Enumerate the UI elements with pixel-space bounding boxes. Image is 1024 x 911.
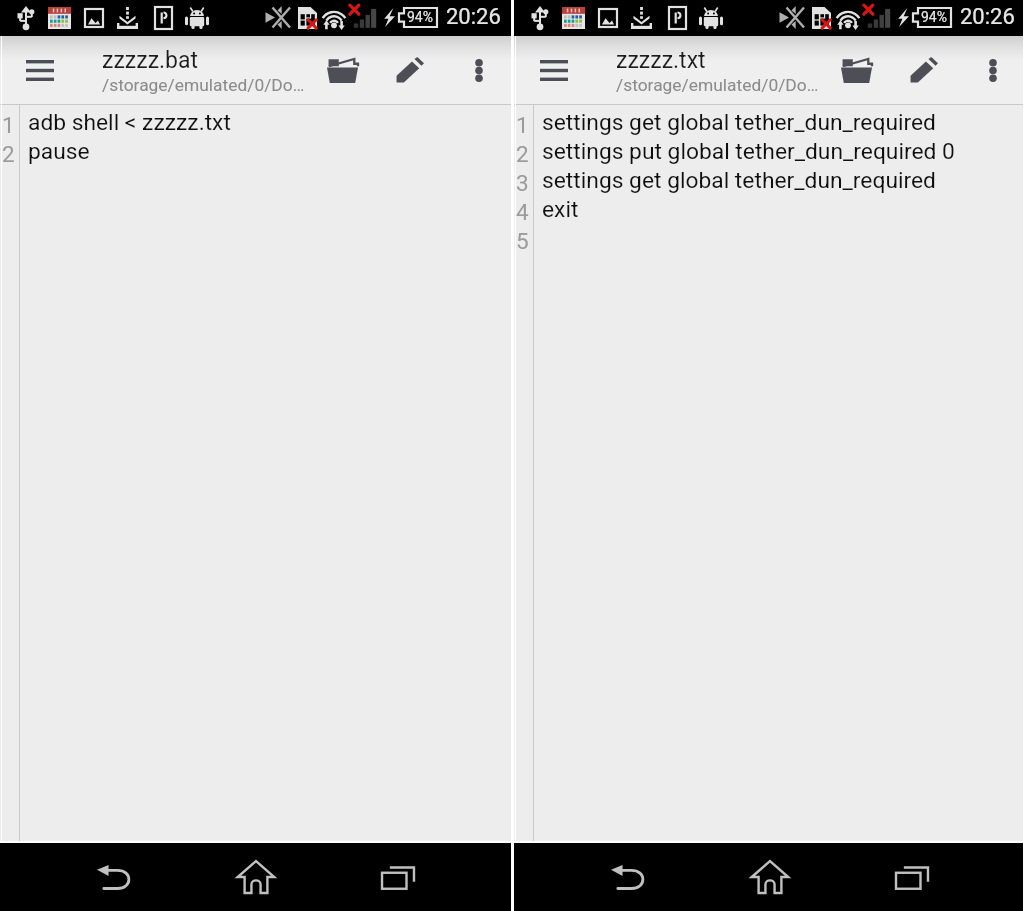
button[interactable]: Navigation menu — [526, 42, 582, 98]
staticText: 5 — [516, 228, 529, 254]
button[interactable]: More options — [965, 42, 1021, 98]
staticText: exit — [542, 196, 579, 223]
staticText: settings put global tether_dun_required … — [542, 138, 955, 165]
button[interactable]: Edit — [382, 42, 438, 98]
staticText: zzzzz.txt — [616, 47, 706, 74]
button[interactable]: Back — [600, 849, 656, 905]
staticText: 2 — [516, 141, 529, 167]
button[interactable]: More options — [451, 42, 507, 98]
button[interactable]: Recent apps — [370, 849, 426, 905]
staticText: zzzzz.bat — [102, 47, 199, 74]
button[interactable]: Open file — [314, 42, 370, 98]
staticText: 2 — [2, 141, 15, 167]
staticText: 3 — [516, 170, 529, 196]
staticText: pause — [28, 138, 90, 165]
staticText: 20:26 — [960, 4, 1015, 30]
staticText: 20:26 — [446, 4, 501, 30]
staticText: settings get global tether_dun_required — [542, 167, 936, 194]
staticText: adb shell < zzzzz.txt — [28, 109, 231, 136]
button[interactable]: Home — [742, 849, 798, 905]
staticText: 1 — [2, 112, 15, 138]
button[interactable]: Open file — [828, 42, 884, 98]
staticText: settings get global tether_dun_required — [542, 109, 936, 136]
button[interactable]: Navigation menu — [12, 42, 68, 98]
button[interactable]: Home — [228, 849, 284, 905]
staticText: /storage/emulated/0/Do… — [102, 75, 305, 95]
staticText: 4 — [516, 199, 529, 225]
staticText: 1 — [516, 112, 529, 138]
button[interactable]: Edit — [896, 42, 952, 98]
staticText: 94% — [921, 9, 947, 25]
staticText: 94% — [407, 9, 433, 25]
staticText: /storage/emulated/0/Do… — [616, 75, 819, 95]
button[interactable]: Back — [86, 849, 142, 905]
button[interactable]: Recent apps — [884, 849, 940, 905]
